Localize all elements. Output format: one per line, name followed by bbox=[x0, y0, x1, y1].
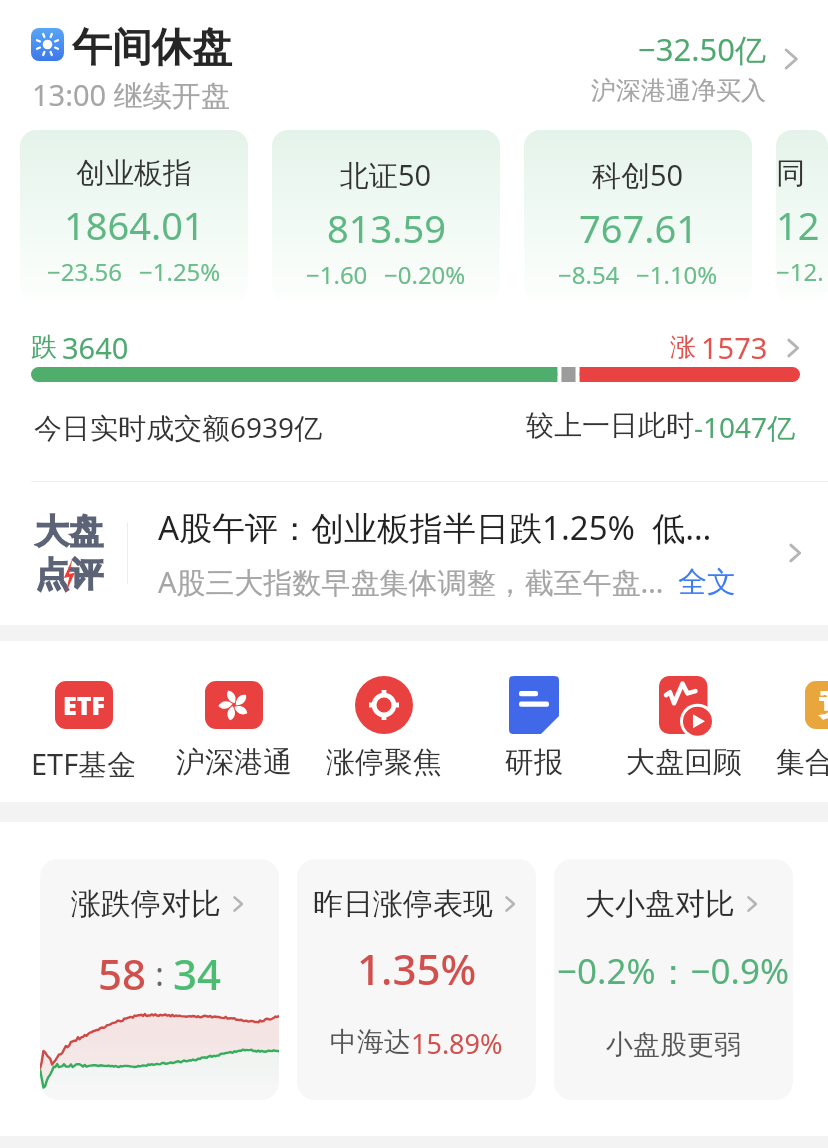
staticText: −12.1 bbox=[776, 255, 828, 288]
button[interactable]: 同花顺 bbox=[776, 130, 828, 302]
staticText: 1.35% bbox=[357, 940, 477, 997]
staticText: 创业板指 bbox=[76, 155, 192, 192]
staticText: 涨 bbox=[670, 331, 696, 364]
staticText: 58 bbox=[98, 945, 147, 1002]
button[interactable]: 午间休盘 bbox=[0, 0, 828, 130]
button[interactable]: 研报 bbox=[459, 675, 609, 781]
staticText: 13:00 继续开盘 bbox=[32, 75, 230, 115]
staticText: 大盘回顾 bbox=[626, 744, 742, 781]
staticText: −0.20% bbox=[384, 258, 466, 291]
staticText: −1.10% bbox=[636, 258, 718, 291]
button[interactable]: 科创50 bbox=[524, 130, 752, 302]
staticText: 大小盘对比 bbox=[585, 885, 735, 923]
button[interactable]: 创业板指 bbox=[20, 130, 248, 302]
staticText: 沪深港通净买入 bbox=[591, 75, 766, 106]
staticText: −1.60 bbox=[306, 258, 368, 291]
staticText: 跌 bbox=[31, 331, 57, 364]
staticText: −0.2%：−0.9% bbox=[557, 947, 790, 995]
staticText: : bbox=[147, 952, 173, 996]
staticText: 15.89% bbox=[411, 1025, 503, 1062]
staticText: 集合竞价 bbox=[776, 744, 828, 781]
staticText: −8.54 bbox=[558, 258, 620, 291]
staticText: 沪深港通 bbox=[176, 744, 292, 781]
staticText: 今日实时成交额6939亿 bbox=[34, 408, 323, 446]
button[interactable]: 跌 bbox=[0, 328, 828, 367]
staticText: -1047亿 bbox=[694, 408, 796, 446]
staticText: 北证50 bbox=[340, 155, 432, 195]
staticText: 全文 bbox=[678, 564, 736, 601]
staticText: −32.50亿 bbox=[638, 28, 766, 70]
button[interactable]: ETF基金 bbox=[9, 675, 159, 784]
staticText: 点评 bbox=[35, 553, 103, 596]
staticText: 竞 bbox=[819, 686, 828, 724]
staticText: 1864.01 bbox=[64, 199, 205, 251]
button[interactable]: 涨停聚焦 bbox=[309, 675, 459, 781]
staticText: 767.61 bbox=[579, 202, 698, 254]
staticText: 中海达 bbox=[330, 1025, 411, 1059]
staticText: A股三大指数早盘集体调整，截至午盘… bbox=[158, 562, 664, 602]
staticText: A股午评：创业板指半日跌1.25% 低… bbox=[158, 505, 712, 550]
button[interactable]: 大盘 bbox=[0, 482, 828, 624]
staticText: 午间休盘 bbox=[72, 22, 232, 72]
staticText: −23.56 bbox=[47, 255, 123, 288]
staticText: 1245.33 bbox=[776, 199, 828, 251]
staticText: 较上一日此时 bbox=[526, 408, 694, 443]
staticText: ETF bbox=[63, 688, 105, 722]
staticText: 昨日涨停表现 bbox=[313, 885, 493, 923]
staticText: 涨停聚焦 bbox=[326, 744, 442, 781]
staticText: 研报 bbox=[505, 744, 563, 781]
staticText: 34 bbox=[173, 945, 222, 1002]
staticText: 小盘股更弱 bbox=[606, 1028, 741, 1062]
button[interactable]: 涨跌停对比 bbox=[40, 859, 279, 1100]
staticText: ETF基金 bbox=[31, 744, 137, 784]
button[interactable]: 大小盘对比 bbox=[554, 859, 793, 1100]
staticText: −1.25% bbox=[139, 255, 221, 288]
staticText: 813.59 bbox=[327, 202, 446, 254]
staticText: 3640 bbox=[62, 328, 129, 367]
button[interactable]: 昨日涨停表现 bbox=[297, 859, 536, 1100]
staticText: 大盘 bbox=[35, 510, 103, 553]
button[interactable]: 沪深港通 bbox=[159, 675, 309, 781]
staticText: 科创50 bbox=[592, 155, 684, 195]
button[interactable]: 北证50 bbox=[272, 130, 500, 302]
staticText: 涨跌停对比 bbox=[71, 885, 221, 923]
staticText: 1573 bbox=[701, 328, 768, 367]
staticText: 同花顺 bbox=[776, 155, 828, 192]
button[interactable]: 集合竞价 bbox=[759, 675, 828, 781]
button[interactable]: 大盘回顾 bbox=[609, 675, 759, 781]
